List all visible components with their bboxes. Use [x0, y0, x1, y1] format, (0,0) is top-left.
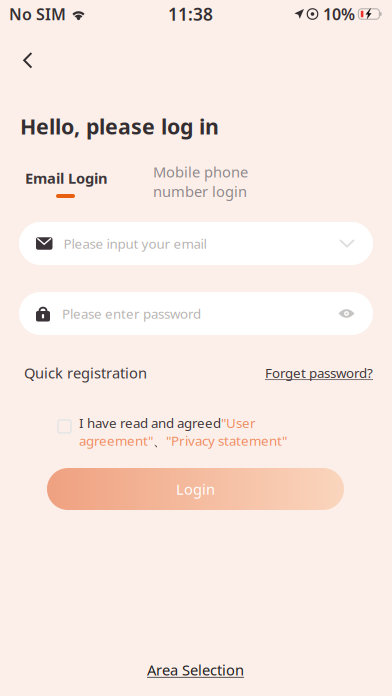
button[interactable]: Forget password? — [259, 359, 379, 387]
button[interactable]: Please input your email — [19, 222, 373, 265]
button[interactable]: Email Login — [0, 166, 120, 202]
staticText: Quick registration — [24, 363, 147, 382]
button[interactable]: Please enter password — [19, 292, 373, 335]
staticText: Hello, please log in — [20, 112, 219, 140]
staticText: Email Login — [25, 168, 108, 188]
button[interactable]: Login — [47, 468, 344, 510]
staticText: Forget password? — [265, 364, 373, 382]
staticText: 11:38 — [168, 2, 213, 25]
button[interactable]: Agree to the user agreement and privacy … — [52, 414, 77, 439]
staticText: Mobile phone number login — [153, 162, 248, 201]
button[interactable]: Mobile phone number login — [145, 158, 256, 205]
button[interactable]: Back — [0, 42, 51, 79]
staticText: I have read and agreed"User agreement"、"… — [79, 414, 287, 449]
staticText: Area Selection — [147, 660, 244, 679]
staticText: Please enter password — [62, 305, 201, 322]
staticText: Please input your email — [63, 235, 206, 252]
button[interactable]: Area Selection — [139, 655, 252, 684]
staticText: No SIM — [9, 3, 66, 25]
staticText: 10% — [323, 3, 355, 25]
staticText: Login — [176, 479, 215, 499]
button[interactable]: Quick registration — [18, 358, 153, 387]
